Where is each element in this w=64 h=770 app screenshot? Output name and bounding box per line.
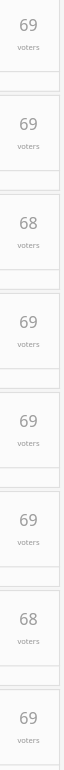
button[interactable]: 68 [0, 590, 64, 686]
staticText: voters [17, 537, 40, 547]
staticText: 69 [19, 14, 38, 36]
staticText: 68 [19, 608, 38, 630]
staticText: voters [17, 42, 40, 52]
staticText: 69 [19, 509, 38, 531]
staticText: voters [17, 735, 40, 745]
button[interactable]: 69 [0, 293, 64, 389]
staticText: 69 [19, 311, 38, 333]
button[interactable]: 68 [0, 194, 64, 290]
button[interactable]: 69 [0, 392, 64, 488]
staticText: voters [17, 636, 40, 646]
staticText: 69 [19, 410, 38, 432]
button[interactable]: 69 [0, 0, 64, 92]
button[interactable]: 69 [0, 491, 64, 587]
staticText: voters [17, 339, 40, 349]
staticText: voters [17, 240, 40, 250]
button[interactable]: 69 [0, 689, 64, 770]
staticText: 68 [19, 212, 38, 234]
staticText: 69 [19, 113, 38, 135]
staticText: 69 [19, 707, 38, 729]
staticText: voters [17, 438, 40, 448]
staticText: voters [17, 141, 40, 151]
button[interactable]: 69 [0, 95, 64, 191]
